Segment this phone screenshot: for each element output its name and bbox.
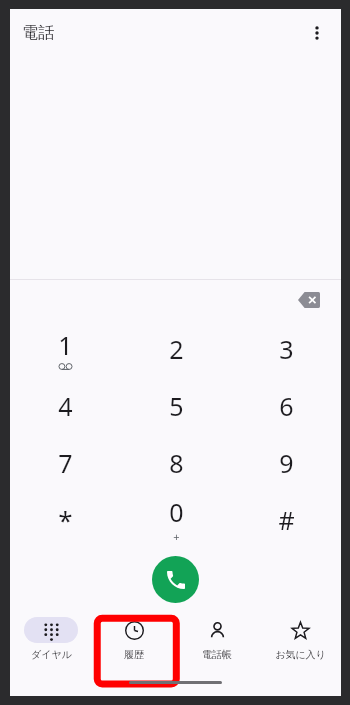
button[interactable]: 5 [121, 377, 231, 434]
staticText: ダイヤル [31, 648, 72, 661]
staticText: + [173, 529, 180, 544]
staticText: 履歴 [124, 648, 144, 661]
staticText: 6 [279, 389, 294, 423]
button[interactable]: 履歴 [92, 610, 175, 676]
button[interactable]: 通話 [152, 556, 199, 603]
staticText: 1 [58, 328, 73, 362]
staticText: 7 [58, 446, 73, 480]
staticText: 0 [169, 495, 184, 529]
staticText: 9 [279, 446, 294, 480]
button[interactable]: 9 [231, 434, 341, 491]
button[interactable]: ダイヤル [10, 610, 92, 676]
staticText: # [278, 503, 295, 537]
button[interactable]: 6 [231, 377, 341, 434]
button[interactable]: 2 [121, 320, 231, 377]
button[interactable]: # [231, 491, 341, 548]
button[interactable]: 7 [10, 434, 121, 491]
staticText: 電話帳 [202, 648, 232, 661]
staticText: 3 [279, 332, 294, 366]
button[interactable]: 電話帳 [175, 610, 258, 676]
button[interactable]: 削除 [287, 280, 331, 320]
button[interactable]: その他のオプション [297, 13, 337, 53]
staticText: * [58, 502, 73, 537]
staticText: 4 [58, 389, 73, 423]
staticText: 電話 [22, 23, 54, 43]
button[interactable]: お気に入り [258, 610, 341, 676]
staticText: 8 [169, 446, 184, 480]
staticText: 5 [169, 389, 184, 423]
button[interactable]: 4 [10, 377, 121, 434]
staticText: お気に入り [275, 648, 326, 661]
button[interactable]: * [10, 491, 121, 548]
button[interactable]: 1 [10, 320, 121, 377]
button[interactable]: 3 [231, 320, 341, 377]
staticText: 2 [169, 332, 184, 366]
button[interactable]: 8 [121, 434, 231, 491]
button[interactable]: 0 [121, 491, 231, 548]
